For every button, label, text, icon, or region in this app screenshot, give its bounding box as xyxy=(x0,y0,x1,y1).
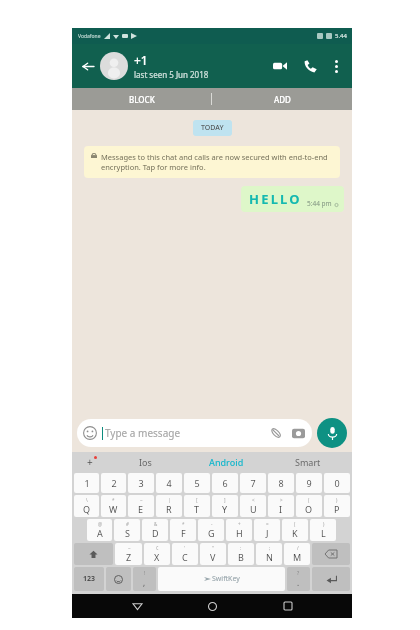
staticText: I xyxy=(279,503,283,515)
button[interactable]: Type a message xyxy=(83,419,306,447)
button[interactable]: ? xyxy=(287,567,310,591)
button[interactable]: 8 xyxy=(268,473,294,493)
button[interactable]: ( xyxy=(282,519,308,541)
button[interactable]: * xyxy=(101,495,126,517)
staticText: Ios xyxy=(139,456,152,468)
button[interactable]: ] xyxy=(212,495,238,517)
button[interactable]: Emoji xyxy=(106,567,131,591)
button[interactable]: BLOCK xyxy=(72,88,211,110)
button[interactable]: ADD xyxy=(212,88,352,110)
staticText: + xyxy=(238,521,241,527)
button[interactable]: Android xyxy=(186,452,267,472)
staticText: G xyxy=(208,527,215,539)
staticText: 7 xyxy=(250,477,256,489)
button[interactable]: @ xyxy=(87,519,112,541)
staticText: V xyxy=(210,551,216,563)
button[interactable]: Add xyxy=(76,452,104,472)
button[interactable]: : xyxy=(228,543,254,565)
staticText: 8 xyxy=(278,477,284,489)
staticText: 1 xyxy=(84,477,90,489)
button[interactable]: Video call xyxy=(268,54,292,78)
staticText: +1 xyxy=(134,52,148,68)
button[interactable]: Back xyxy=(78,56,98,76)
button[interactable]: ' xyxy=(172,543,198,565)
button[interactable]: 2 xyxy=(101,473,126,493)
button[interactable]: + xyxy=(226,519,252,541)
button[interactable]: HELLO xyxy=(249,190,339,208)
button[interactable]: Attach xyxy=(268,425,284,441)
button[interactable]: | xyxy=(156,495,182,517)
staticText: HELLO xyxy=(249,190,302,208)
staticText: K xyxy=(292,527,298,539)
button[interactable]: Ios xyxy=(104,452,186,472)
button[interactable]: 4 xyxy=(156,473,182,493)
staticText: F xyxy=(181,527,186,539)
button[interactable]: Smart xyxy=(267,452,348,472)
staticText: U xyxy=(250,503,257,515)
button[interactable]: ; xyxy=(256,543,282,565)
staticText: 0 xyxy=(334,477,340,489)
button[interactable]: 123 xyxy=(74,567,104,591)
button[interactable]: Contact photo xyxy=(100,52,128,80)
staticText: ) xyxy=(323,521,325,527)
staticText: | xyxy=(168,497,171,503)
staticText: SwiftKey xyxy=(212,574,240,584)
button[interactable]: * xyxy=(170,519,196,541)
button[interactable]: \ xyxy=(74,495,99,517)
staticText: > xyxy=(280,497,283,503)
button[interactable]: 1 xyxy=(74,473,99,493)
button[interactable]: / xyxy=(284,543,310,565)
button[interactable]: 7 xyxy=(240,473,266,493)
button[interactable]: - xyxy=(198,519,224,541)
staticText: B xyxy=(238,551,244,563)
button[interactable]: 3 xyxy=(128,473,154,493)
staticText: 3 xyxy=(138,477,144,489)
button[interactable]: +1 xyxy=(134,52,268,80)
button[interactable]: Enter xyxy=(312,567,350,591)
staticText: L xyxy=(321,527,326,539)
button[interactable]: 0 xyxy=(324,473,350,493)
button[interactable]: < xyxy=(240,495,266,517)
staticText: Vodafone xyxy=(78,33,101,40)
button[interactable]: 5 xyxy=(184,473,210,493)
staticText: W xyxy=(109,503,118,515)
staticText: ¢ xyxy=(156,545,159,551)
button[interactable]: ~ xyxy=(115,543,142,565)
button[interactable]: # xyxy=(114,519,140,541)
staticText: + xyxy=(87,455,93,469)
button[interactable]: ) xyxy=(310,519,336,541)
button[interactable]: Space xyxy=(158,567,285,591)
staticText: 9 xyxy=(306,477,312,489)
button[interactable]: Back xyxy=(126,595,148,617)
button[interactable]: [ xyxy=(184,495,210,517)
staticText: [ xyxy=(196,497,198,503)
button[interactable]: Home xyxy=(201,595,223,617)
button[interactable]: 9 xyxy=(296,473,322,493)
staticText: A xyxy=(97,527,103,539)
button[interactable]: > xyxy=(268,495,294,517)
button[interactable]: = xyxy=(254,519,280,541)
button[interactable]: 6 xyxy=(212,473,238,493)
button[interactable]: TODAY xyxy=(201,123,224,133)
button[interactable]: & xyxy=(142,519,168,541)
button[interactable]: " xyxy=(200,543,226,565)
staticText: = xyxy=(266,521,269,527)
staticText: BLOCK xyxy=(129,94,155,105)
button[interactable]: Recent apps xyxy=(277,595,299,617)
button[interactable]: ~ xyxy=(128,495,154,517)
button[interactable]: ¢ xyxy=(144,543,170,565)
button[interactable]: More options xyxy=(326,56,346,76)
button[interactable]: Record voice message xyxy=(317,418,347,448)
staticText: P xyxy=(334,503,340,515)
staticText: ) xyxy=(336,497,338,503)
button[interactable]: Voice call xyxy=(298,54,322,78)
staticText: ] xyxy=(224,497,226,503)
button[interactable]: Backspace xyxy=(312,543,350,565)
button[interactable]: Shift xyxy=(74,543,113,565)
staticText: # xyxy=(126,521,129,527)
button[interactable]: ( xyxy=(296,495,322,517)
button[interactable]: Camera xyxy=(290,425,306,441)
button[interactable]: ! xyxy=(133,567,156,591)
button[interactable]: Messages to this chat and calls are now … xyxy=(91,152,333,172)
button[interactable]: ) xyxy=(324,495,350,517)
